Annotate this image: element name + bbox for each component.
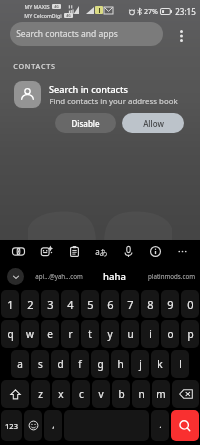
staticText: d (57, 357, 64, 371)
button[interactable]: Search (171, 410, 199, 441)
button[interactable]: x (52, 380, 70, 408)
button[interactable]: m (152, 380, 170, 408)
button[interactable]: i (141, 320, 159, 348)
button[interactable]: 6 (101, 290, 119, 318)
button[interactable]: b (112, 380, 130, 408)
staticText: x (58, 387, 64, 401)
staticText: 0 (187, 297, 194, 312)
staticText: e (47, 327, 53, 341)
button[interactable]: n (132, 380, 150, 408)
staticText: v (98, 387, 104, 401)
button[interactable]: Search in contacts (0, 81, 200, 108)
staticText: 27% (144, 7, 158, 17)
button[interactable]: 3 (41, 290, 59, 318)
staticText: CONTACTS (13, 61, 56, 71)
button[interactable]: More options (169, 240, 196, 263)
button[interactable]: v (92, 380, 110, 408)
button[interactable]: q (1, 320, 19, 348)
button[interactable]: Info (142, 240, 169, 263)
button[interactable]: More options (163, 22, 200, 49)
staticText: Allow (143, 118, 164, 129)
button[interactable]: h (111, 350, 129, 378)
staticText: Find contacts in your address book (49, 96, 178, 107)
button[interactable]: Translate (88, 240, 115, 263)
staticText: . (159, 418, 162, 430)
button[interactable]: Emoji (24, 410, 42, 441)
staticText: 6 (107, 297, 114, 312)
button[interactable]: Voice input (115, 240, 142, 263)
staticText: a (17, 357, 23, 371)
button[interactable]: d (51, 350, 69, 378)
button[interactable]: api...@yah...com (30, 263, 87, 289)
staticText: 8 (147, 297, 154, 312)
button[interactable]: r (61, 320, 79, 348)
button[interactable]: 5 (81, 290, 99, 318)
button[interactable]: Gboard (4, 240, 32, 263)
button[interactable]: 8 (141, 290, 159, 318)
staticText: Disable (71, 118, 100, 129)
button[interactable]: platinmods.com (142, 263, 200, 289)
button[interactable]: Stickers (32, 240, 60, 263)
button[interactable]: 4 (61, 290, 79, 318)
button[interactable]: Clipboard (60, 240, 88, 263)
staticText: 1 (7, 297, 14, 312)
staticText: MY MAXIS (24, 3, 50, 10)
button[interactable]: Shift (1, 380, 29, 408)
staticText: i (149, 327, 152, 341)
button[interactable]: z (31, 380, 50, 408)
button[interactable]: l (171, 350, 189, 378)
button[interactable]: y (101, 320, 119, 348)
button[interactable]: Disable (55, 113, 116, 133)
button[interactable]: Backspace (172, 380, 199, 408)
button[interactable]: 0 (181, 290, 199, 318)
button[interactable]: 1 (1, 290, 19, 318)
staticText: 5 (87, 297, 94, 312)
staticText: n (138, 387, 145, 401)
staticText: b (118, 387, 125, 401)
staticText: y (107, 327, 113, 341)
staticText: o (167, 327, 174, 341)
button[interactable]: t (81, 320, 99, 348)
button[interactable]: 9 (161, 290, 179, 318)
button[interactable]: e (41, 320, 59, 348)
button[interactable]: f (71, 350, 89, 378)
staticText: api...@yah...com (35, 272, 83, 280)
button[interactable]: u (121, 320, 139, 348)
button[interactable]: o (161, 320, 179, 348)
button[interactable]: p (181, 320, 199, 348)
staticText: 123 (5, 421, 18, 431)
button[interactable]: j (131, 350, 149, 378)
staticText: 4 (67, 297, 74, 312)
button[interactable]: 123 (1, 410, 22, 441)
button[interactable]: . (151, 410, 169, 441)
button[interactable]: k (151, 350, 169, 378)
button[interactable]: Expand suggestions (0, 263, 30, 289)
button[interactable]: Allow (122, 113, 184, 133)
button[interactable]: g (91, 350, 109, 378)
button[interactable]: w (21, 320, 39, 348)
button[interactable]: Search contacts and apps (10, 22, 163, 46)
staticText: s (38, 357, 43, 371)
button[interactable]: , (44, 410, 62, 441)
button[interactable]: a (11, 350, 29, 378)
staticText: k (157, 357, 163, 371)
button[interactable]: c (72, 380, 90, 408)
staticText: platinmods.com (148, 272, 195, 280)
button[interactable]: s (31, 350, 49, 378)
button[interactable]: haha (87, 263, 142, 289)
staticText: 3 (47, 297, 54, 312)
staticText: 7 (127, 297, 134, 312)
staticText: 23:15 (175, 6, 196, 17)
staticText: c (79, 387, 84, 401)
button[interactable]: 2 (21, 290, 39, 318)
staticText: r (68, 327, 73, 341)
staticText: u (127, 327, 134, 341)
staticText: g (97, 357, 104, 371)
staticText: 4G (66, 13, 71, 18)
staticText: p (187, 327, 194, 341)
button[interactable]: 7 (121, 290, 139, 318)
staticText: Search contacts and apps (16, 28, 118, 40)
staticText: 9 (167, 297, 174, 312)
staticText: t (88, 327, 92, 341)
